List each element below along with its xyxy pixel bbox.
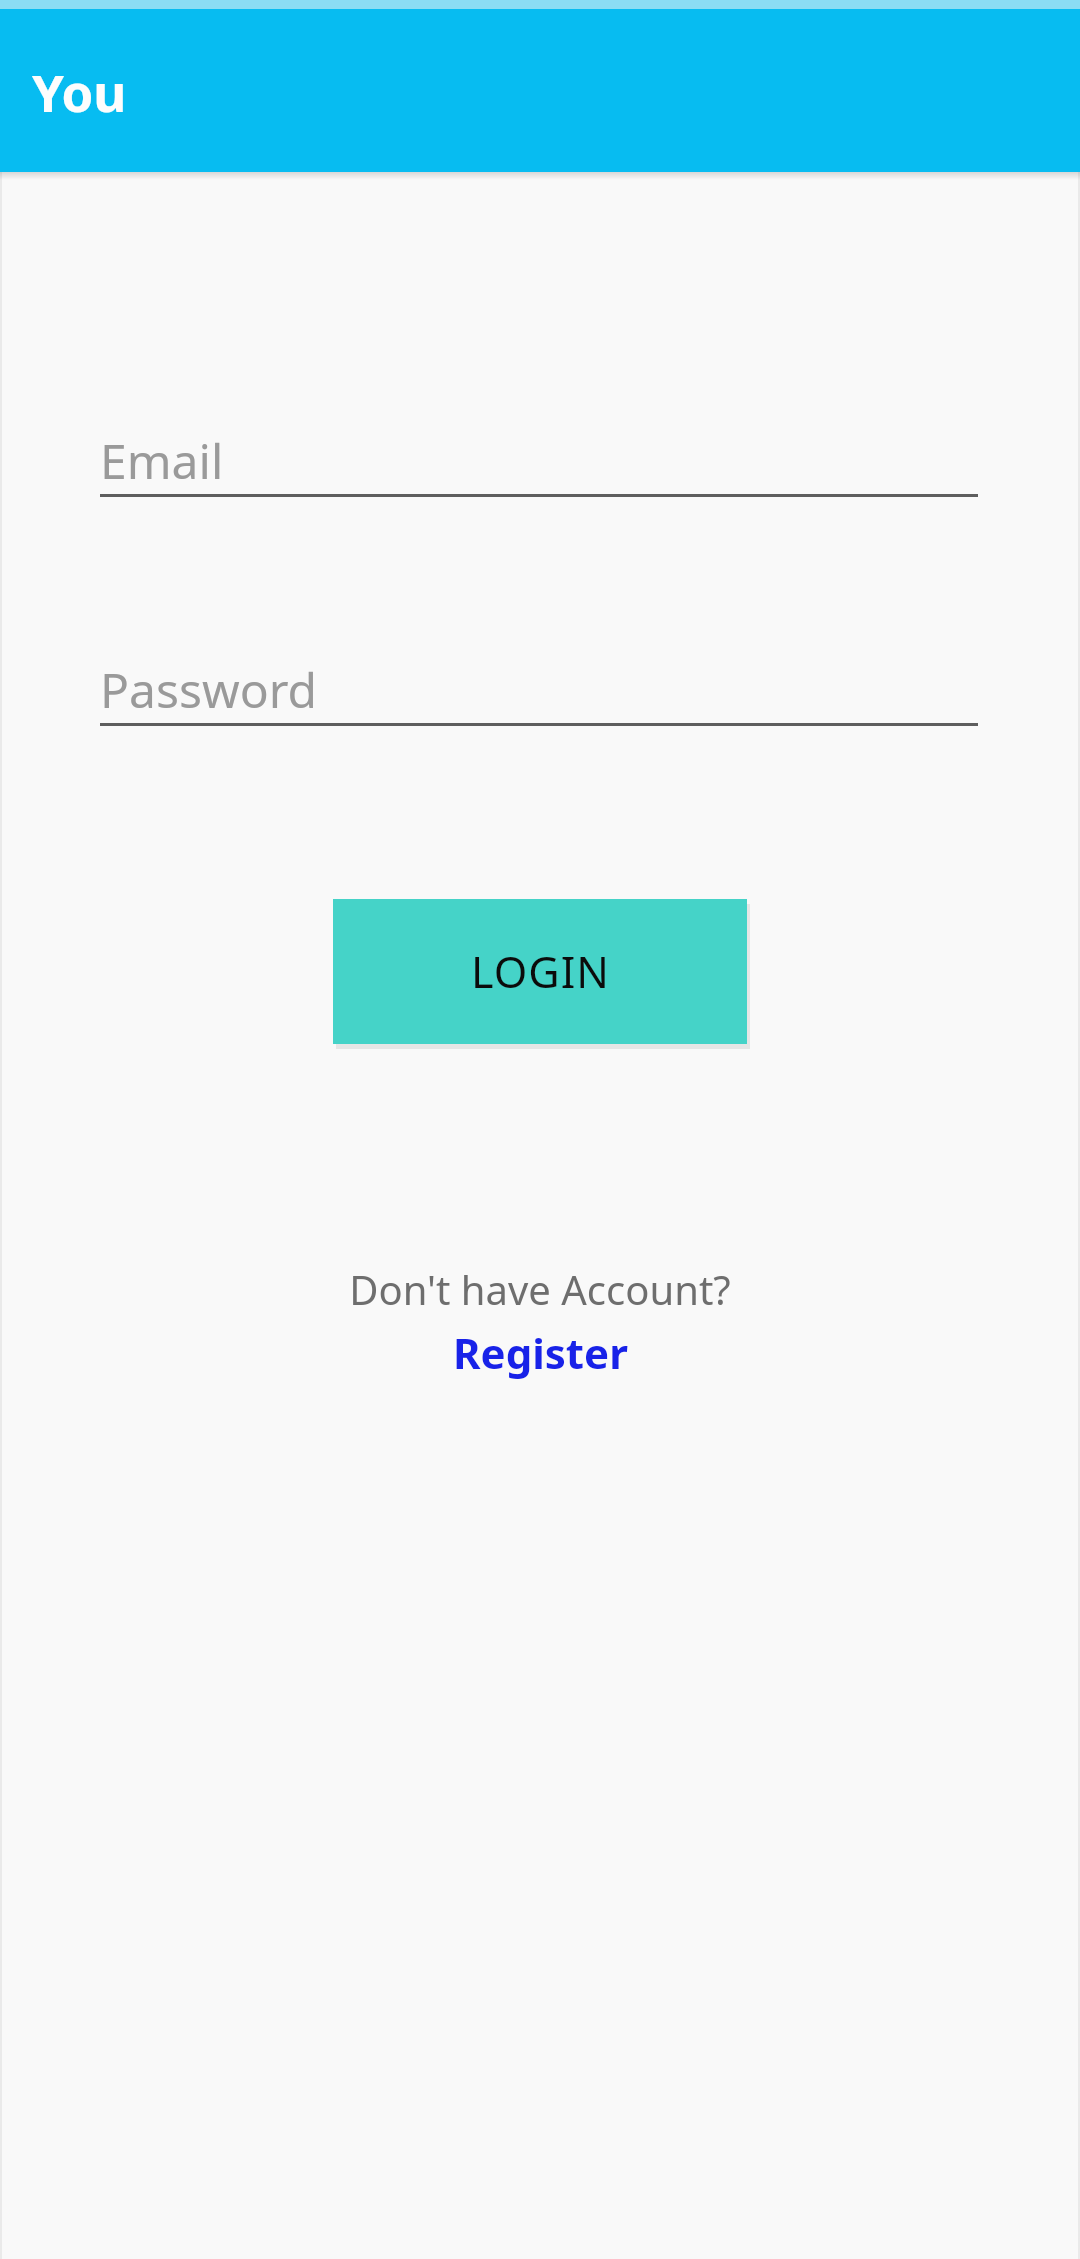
staticText: LOGIN (471, 942, 610, 1001)
button[interactable]: Email (100, 428, 978, 494)
button[interactable]: Password (100, 657, 978, 723)
staticText: Password (100, 657, 318, 722)
button[interactable]: Register (453, 1324, 628, 1381)
staticText: You (32, 57, 127, 126)
staticText: Don't have Account? (349, 1262, 731, 1316)
staticText: Email (100, 428, 224, 493)
staticText: Register (453, 1324, 628, 1381)
button[interactable]: LOGIN (333, 899, 747, 1044)
